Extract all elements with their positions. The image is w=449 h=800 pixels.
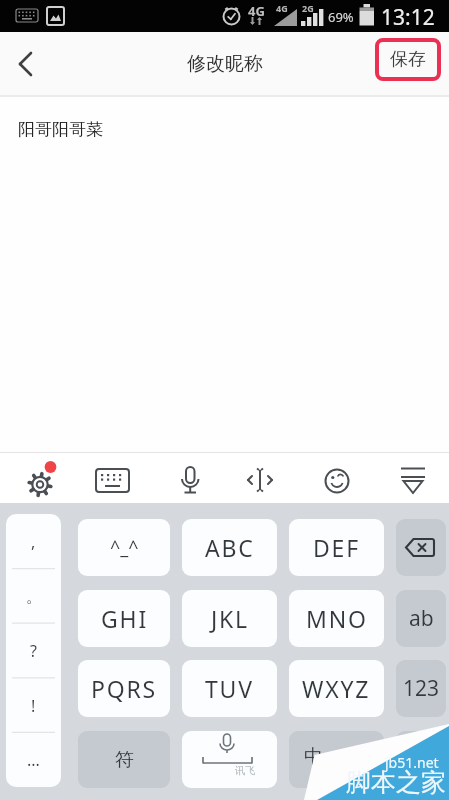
button[interactable]: MNO [289,590,384,647]
staticText: TUV [205,673,254,704]
staticText: MNO [306,603,368,634]
staticText: 阳哥阳哥菜 [18,119,103,140]
button[interactable] [394,459,434,499]
button[interactable] [94,461,134,497]
staticText: 4G [276,2,288,14]
button[interactable]: GHI [78,590,170,647]
staticText: WXYZ [302,673,371,704]
button[interactable] [242,462,278,502]
button[interactable]: 讯飞 [182,731,277,788]
staticText: DEF [313,532,360,563]
button[interactable]: TUV [182,660,277,717]
staticText: 4G [248,2,265,20]
staticText: 脚本之家 [346,767,446,798]
button[interactable] [396,731,446,788]
button[interactable]: 保存 [375,38,441,81]
button[interactable] [8,48,48,80]
staticText: ^_^ [110,535,139,560]
staticText: ... [27,749,40,771]
button[interactable]: PQRS [78,660,170,717]
staticText: JKL [211,603,249,634]
staticText: ab [409,604,434,633]
staticText: 123 [403,674,440,703]
staticText: 讯飞 [235,764,255,777]
button[interactable] [22,459,62,499]
button[interactable] [396,519,446,576]
staticText: ? [30,640,37,662]
staticText: GHI [101,603,148,634]
button[interactable]: DEF [289,519,384,576]
staticText: 2G [302,2,314,14]
staticText: ABC [205,532,255,563]
button[interactable]: , [6,514,61,787]
staticText: 修改昵称 [187,52,263,76]
staticText: ! [31,695,36,717]
staticText: 69% [328,8,354,26]
button[interactable]: ^_^ [78,519,170,576]
button[interactable] [318,462,358,502]
staticText: 中 [304,745,323,769]
button[interactable]: JKL [182,590,277,647]
staticText: jb51.net [385,753,439,772]
button[interactable] [172,461,208,503]
button[interactable]: ABC [182,519,277,576]
button[interactable]: 123 [396,660,446,717]
button[interactable]: 符 [78,731,170,788]
button[interactable]: WXYZ [289,660,384,717]
staticText: 。 [26,587,42,607]
staticText: 保存 [390,48,426,71]
staticText: , [31,531,36,553]
staticText: 符 [115,748,134,772]
button[interactable]: 中 [289,731,384,788]
staticText: PQRS [91,673,158,704]
button[interactable]: ab [396,590,446,647]
staticText: 13:12 [381,3,435,32]
